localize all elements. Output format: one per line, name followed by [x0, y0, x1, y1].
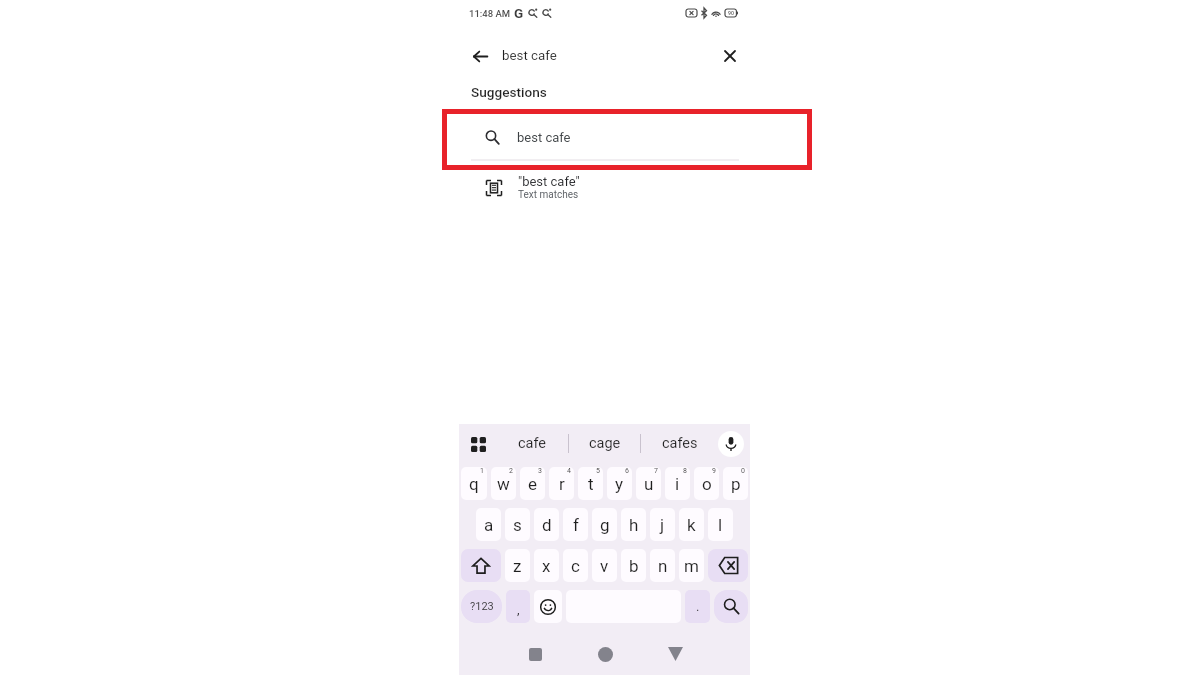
button[interactable]: k — [679, 508, 704, 541]
staticText: g — [600, 515, 610, 535]
staticText: m — [684, 556, 699, 576]
button[interactable]: b — [621, 549, 646, 582]
staticText: cafe — [518, 435, 547, 452]
staticText: w — [497, 474, 510, 494]
button[interactable]: Emoji — [534, 590, 562, 623]
staticText: t — [588, 474, 594, 494]
staticText: cage — [589, 435, 621, 452]
staticText: best cafe — [517, 130, 571, 145]
button[interactable]: Backspace — [708, 549, 748, 582]
button[interactable]: i — [665, 467, 690, 500]
staticText: 2 — [509, 467, 513, 475]
staticText: 7 — [654, 467, 658, 475]
staticText: r — [559, 474, 565, 494]
button[interactable]: "best cafe" — [459, 168, 750, 208]
staticText: u — [644, 474, 654, 494]
button[interactable]: Shift — [461, 549, 501, 582]
button[interactable]: m — [679, 549, 704, 582]
button[interactable]: Clear — [710, 36, 750, 76]
button[interactable]: n — [650, 549, 675, 582]
staticText: b — [629, 556, 639, 576]
button[interactable]: v — [592, 549, 617, 582]
staticText: ?123 — [470, 600, 494, 613]
staticText: 90 — [728, 10, 734, 16]
staticText: z — [513, 556, 522, 576]
staticText: 6 — [625, 467, 629, 475]
button[interactable]: best cafe — [499, 36, 710, 76]
staticText: j — [660, 515, 665, 535]
staticText: s — [513, 515, 522, 535]
staticText: c — [571, 556, 580, 576]
button[interactable]: l — [708, 508, 733, 541]
staticText: cafes — [662, 435, 698, 452]
staticText: p — [731, 474, 741, 494]
button[interactable]: cafes — [641, 424, 718, 463]
button[interactable]: w — [491, 467, 516, 500]
staticText: y — [615, 474, 624, 494]
button[interactable]: Back — [459, 36, 499, 76]
staticText: 11:48 AM — [469, 8, 511, 19]
button[interactable]: Home — [588, 637, 622, 671]
staticText: 3 — [538, 467, 542, 475]
staticText: 4 — [567, 467, 571, 475]
button[interactable]: q — [461, 467, 487, 500]
staticText: 5 — [596, 467, 600, 475]
button[interactable]: z — [505, 549, 530, 582]
button[interactable]: g — [592, 508, 617, 541]
button[interactable]: , — [506, 590, 530, 623]
staticText: 0 — [741, 467, 745, 475]
staticText: l — [718, 515, 723, 535]
button[interactable]: . — [685, 590, 710, 623]
button[interactable]: Recents — [518, 637, 552, 671]
staticText: 1 — [480, 467, 484, 475]
button[interactable]: s — [505, 508, 530, 541]
staticText: . — [696, 599, 700, 614]
button[interactable]: ?123 — [461, 590, 502, 623]
button[interactable]: cafe — [497, 424, 568, 463]
staticText: , — [517, 602, 520, 617]
button[interactable]: x — [534, 549, 559, 582]
button[interactable]: d — [534, 508, 559, 541]
staticText: v — [600, 556, 609, 576]
staticText: x — [542, 556, 551, 576]
staticText: Suggestions — [471, 84, 547, 100]
button[interactable]: p — [723, 467, 748, 500]
staticText: e — [528, 474, 538, 494]
button[interactable]: e — [520, 467, 545, 500]
button[interactable]: r — [549, 467, 574, 500]
button[interactable]: cage — [569, 424, 640, 463]
button[interactable]: best cafe — [459, 117, 750, 161]
staticText: k — [687, 515, 696, 535]
staticText: q — [469, 474, 479, 494]
button[interactable]: Voice input — [718, 431, 744, 457]
staticText: a — [484, 515, 494, 535]
button[interactable]: h — [621, 508, 646, 541]
staticText: Text matches — [518, 189, 579, 201]
staticText: "best cafe" — [518, 174, 580, 189]
button[interactable]: u — [636, 467, 661, 500]
button[interactable]: Back — [658, 637, 692, 671]
staticText: 8 — [683, 467, 687, 475]
staticText: o — [702, 474, 712, 494]
staticText: h — [629, 515, 639, 535]
button[interactable]: y — [607, 467, 632, 500]
button[interactable]: t — [578, 467, 603, 500]
button[interactable]: a — [476, 508, 501, 541]
button[interactable]: Search — [714, 590, 748, 623]
staticText: f — [573, 515, 579, 535]
button[interactable]: Toolbar — [459, 425, 497, 463]
button[interactable]: j — [650, 508, 675, 541]
staticText: 9 — [712, 467, 716, 475]
staticText: i — [675, 474, 680, 494]
button[interactable]: o — [694, 467, 719, 500]
staticText: n — [658, 556, 668, 576]
staticText: best cafe — [502, 48, 557, 64]
staticText: d — [542, 515, 552, 535]
staticText: G — [514, 5, 524, 21]
button[interactable]: f — [563, 508, 588, 541]
button[interactable]: c — [563, 549, 588, 582]
